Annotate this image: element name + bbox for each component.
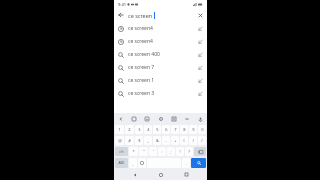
button[interactable]: 6: [162, 125, 170, 134]
staticText: ): [192, 138, 194, 143]
staticText: #: [128, 138, 131, 143]
staticText: 9: [192, 127, 195, 132]
staticText: 1: [118, 127, 121, 132]
button[interactable]: ce screen 7: [114, 61, 207, 74]
button[interactable]: ): [189, 136, 197, 145]
staticText: ABC: [118, 161, 125, 165]
button[interactable]: +: [171, 136, 179, 145]
staticText: -: [165, 138, 167, 143]
staticText: 5: [156, 127, 159, 132]
staticText: ;: [170, 149, 172, 154]
button[interactable]: Search: [191, 158, 206, 168]
button[interactable]: Emoji: [138, 158, 146, 168]
button[interactable]: Insert suggestion: [194, 74, 207, 87]
staticText: ,: [132, 161, 134, 166]
button[interactable]: 1: [115, 125, 124, 134]
button[interactable]: ce screen: [128, 12, 193, 19]
button[interactable]: Insert suggestion: [194, 35, 207, 48]
staticText: ce screen 3: [128, 90, 194, 97]
button[interactable]: Voice input: [196, 115, 204, 123]
staticText: 0: [201, 127, 204, 132]
button[interactable]: 2: [125, 125, 134, 134]
staticText: ce screen 7: [128, 64, 194, 71]
button[interactable]: &: [153, 136, 161, 145]
staticText: ce screen 1: [128, 77, 194, 84]
button[interactable]: 9: [189, 125, 197, 134]
button[interactable]: ce screen 1: [114, 74, 207, 87]
button[interactable]: ": [139, 147, 148, 156]
button[interactable]: ?: [185, 147, 193, 156]
button[interactable]: Recent apps: [181, 169, 192, 180]
button[interactable]: ,: [129, 158, 137, 168]
button[interactable]: Clear search: [193, 8, 207, 22]
button[interactable]: Home: [155, 169, 166, 180]
button[interactable]: /: [198, 136, 206, 145]
staticText: +: [174, 138, 177, 143]
button[interactable]: ce screen4: [114, 35, 207, 48]
button[interactable]: @: [115, 136, 124, 145]
button[interactable]: Insert suggestion: [194, 87, 207, 100]
button[interactable]: #: [125, 136, 134, 145]
button[interactable]: More options: [117, 115, 125, 123]
button[interactable]: Expand toolbar: [183, 115, 191, 123]
staticText: &: [156, 138, 159, 143]
button[interactable]: ce screen 400: [114, 48, 207, 61]
staticText: (: [183, 138, 185, 143]
button[interactable]: sticker: [143, 115, 151, 123]
staticText: 9:41: [118, 2, 126, 7]
button[interactable]: =\<: [115, 147, 128, 156]
staticText: ce screen: [128, 12, 153, 19]
button[interactable]: Insert suggestion: [194, 22, 207, 35]
button[interactable]: GIF: [130, 115, 138, 123]
staticText: ?: [188, 149, 190, 154]
button[interactable]: Insert suggestion: [194, 61, 207, 74]
button[interactable]: Insert suggestion: [194, 48, 207, 61]
staticText: /: [201, 138, 203, 143]
button[interactable]: clipboard: [170, 115, 178, 123]
button[interactable]: ': [149, 147, 157, 156]
staticText: *: [132, 149, 135, 154]
button[interactable]: 3: [135, 125, 143, 134]
button[interactable]: _: [144, 136, 152, 145]
button[interactable]: settings: [157, 115, 165, 123]
button[interactable]: -: [162, 136, 170, 145]
button[interactable]: 8: [180, 125, 188, 134]
staticText: =\<: [119, 150, 124, 154]
button[interactable]: ;: [167, 147, 175, 156]
button[interactable]: Backspace: [194, 147, 206, 156]
button[interactable]: 5: [153, 125, 161, 134]
button[interactable]: ABC: [115, 158, 128, 168]
staticText: ": [143, 149, 145, 154]
button[interactable]: ce screen4: [114, 22, 207, 35]
staticText: ce screen4: [128, 38, 194, 45]
button[interactable]: 4: [144, 125, 152, 134]
staticText: 7: [174, 127, 177, 132]
staticText: 3: [138, 127, 141, 132]
staticText: ce screen4: [128, 25, 194, 32]
staticText: !: [179, 149, 181, 154]
button[interactable]: :: [158, 147, 166, 156]
staticText: _: [147, 138, 149, 143]
staticText: 8: [183, 127, 186, 132]
button[interactable]: $: [135, 136, 143, 145]
button[interactable]: 7: [171, 125, 179, 134]
staticText: .: [185, 161, 187, 166]
button[interactable]: ce screen 3: [114, 87, 207, 100]
button[interactable]: Back: [114, 8, 128, 22]
staticText: $: [138, 138, 141, 143]
button[interactable]: (: [180, 136, 188, 145]
staticText: ': [153, 149, 154, 154]
staticText: :: [161, 149, 163, 154]
button[interactable]: Back: [129, 169, 140, 180]
button[interactable]: 0: [198, 125, 206, 134]
button[interactable]: !: [176, 147, 184, 156]
button[interactable]: *: [129, 147, 138, 156]
staticText: 2: [128, 127, 131, 132]
staticText: 4: [147, 127, 150, 132]
staticText: 6: [165, 127, 168, 132]
staticText: ce screen 400: [128, 51, 194, 58]
staticText: @: [118, 138, 122, 143]
